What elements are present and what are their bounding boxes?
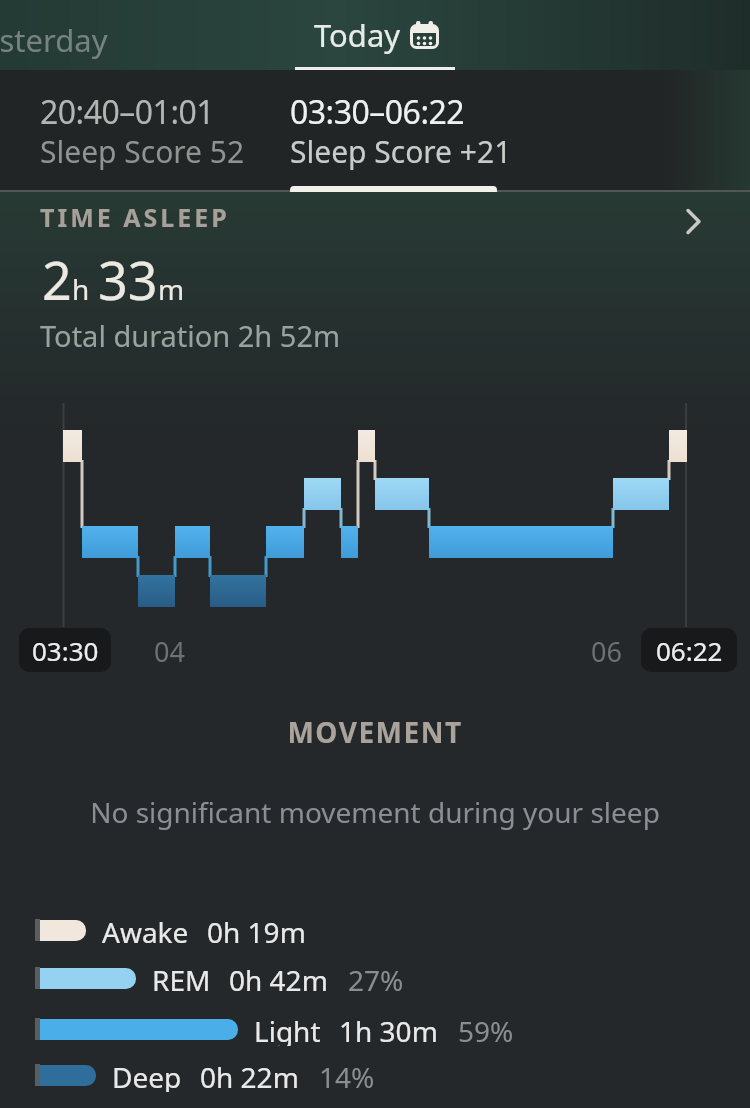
staticText: Light — [254, 1012, 321, 1046]
button[interactable]: Awake — [35, 913, 306, 947]
button[interactable]: 20:40–01:01 — [30, 85, 260, 185]
button[interactable]: TIME ASLEEP — [30, 196, 720, 244]
staticText: h — [72, 270, 90, 308]
staticText: 27% — [348, 961, 404, 995]
staticText: 14% — [319, 1058, 375, 1092]
button[interactable]: Deep — [35, 1058, 375, 1092]
staticText: Today — [314, 14, 401, 56]
staticText: 04 — [154, 633, 185, 670]
staticText: 2 — [42, 244, 72, 315]
button[interactable]: Light — [35, 1012, 514, 1046]
button[interactable]: Yesterday — [0, 0, 126, 70]
staticText: MOVEMENT — [0, 713, 750, 751]
staticText: 59% — [458, 1012, 514, 1046]
staticText: Total duration 2h 52m — [40, 316, 341, 355]
staticText: 20:40–01:01 — [40, 90, 215, 134]
staticText: REM — [152, 961, 211, 995]
button[interactable]: 03:30–06:22 — [280, 85, 520, 185]
staticText: m — [158, 270, 185, 308]
staticText: TIME ASLEEP — [40, 200, 230, 234]
button[interactable]: REM — [35, 961, 404, 995]
staticText: 06:22 — [656, 633, 723, 668]
staticText: No significant movement during your slee… — [0, 793, 750, 831]
staticText: Sleep Score 52 — [40, 131, 245, 172]
staticText: 06 — [591, 633, 622, 670]
staticText: 0h 42m — [229, 961, 328, 995]
staticText: Sleep Score +21 — [290, 131, 512, 172]
staticText: Deep — [112, 1058, 182, 1092]
staticText: 03:30 — [32, 633, 99, 668]
staticText: 0h 22m — [200, 1058, 299, 1092]
button[interactable]: Today — [300, 10, 450, 62]
staticText: 1h 30m — [339, 1012, 438, 1046]
staticText: Awake — [102, 913, 189, 947]
staticText: Yesterday — [0, 19, 108, 61]
staticText: 03:30–06:22 — [290, 90, 465, 134]
staticText: 33 — [98, 244, 158, 315]
staticText: 0h 19m — [207, 913, 306, 947]
